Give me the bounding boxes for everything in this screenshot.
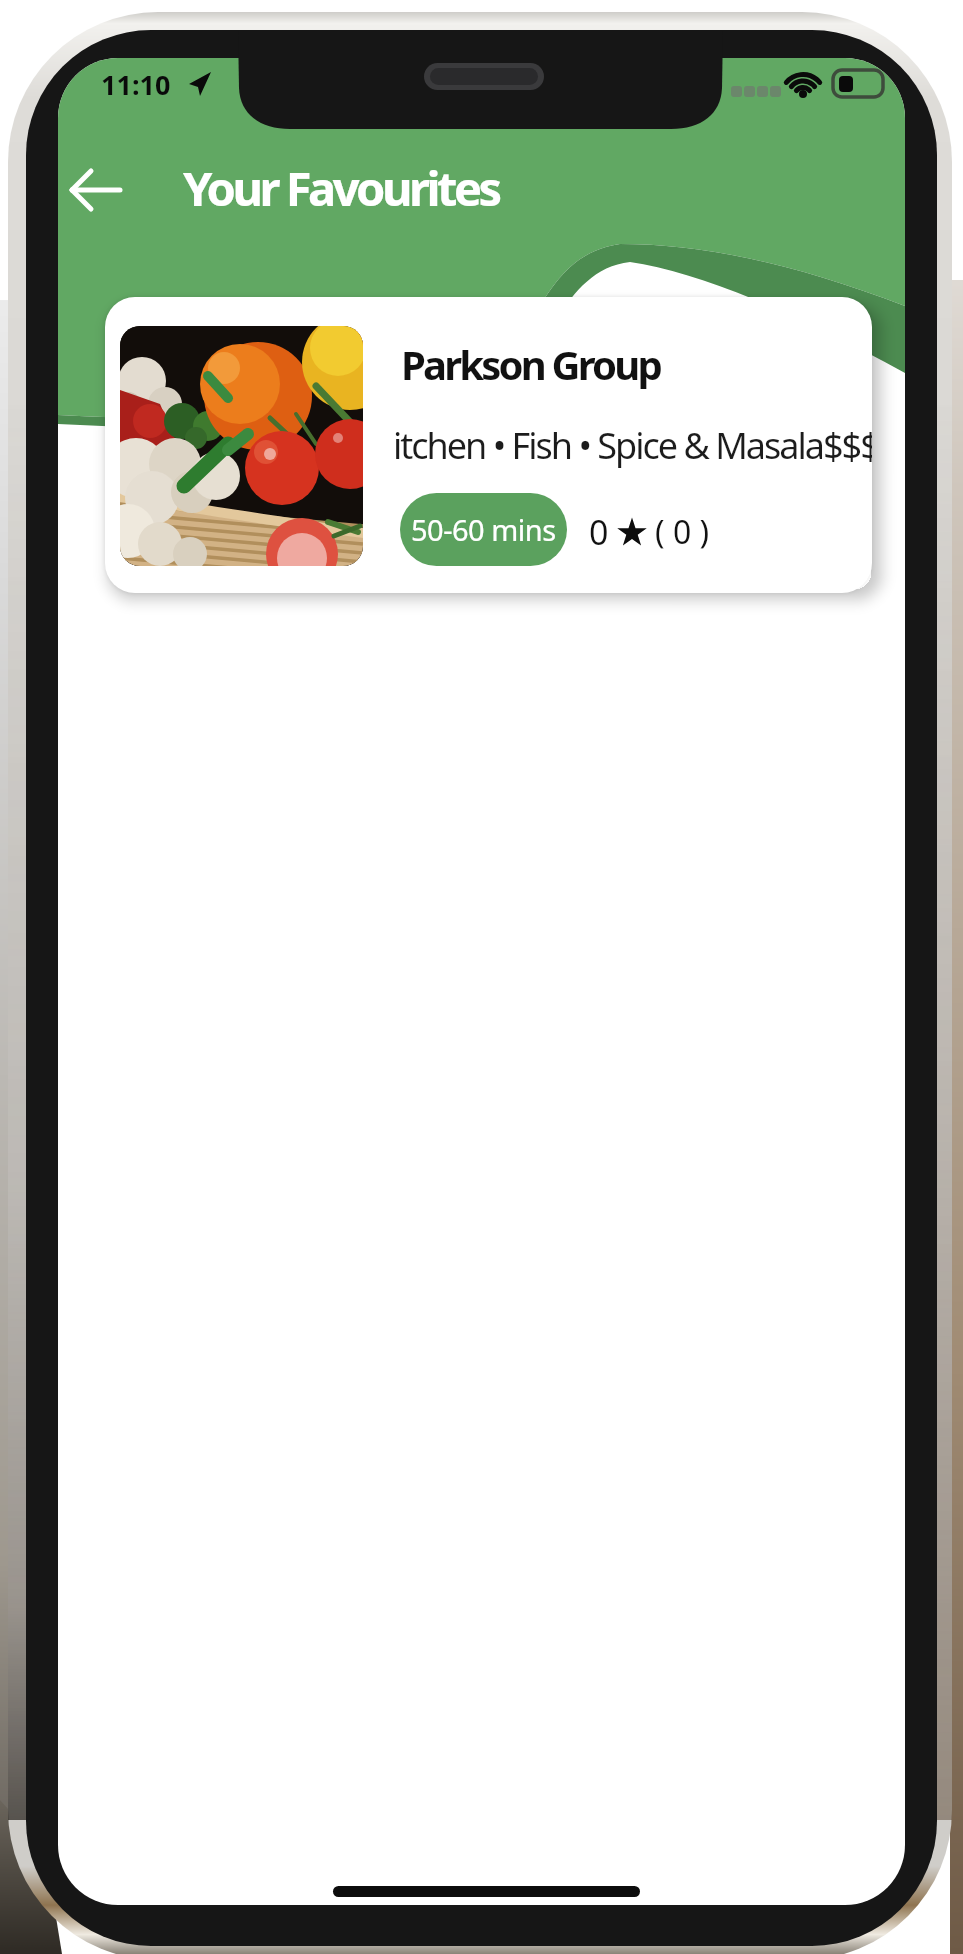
staticText: Your Favourites xyxy=(183,156,499,220)
staticText: 0 xyxy=(589,509,609,555)
staticText: itchen • Fish • Spice & Masala$$$$ xyxy=(393,421,872,470)
staticText: 11:10 xyxy=(101,66,171,103)
button[interactable]: Parkson Group xyxy=(105,297,872,593)
staticText: Parkson Group xyxy=(401,337,660,391)
button[interactable] xyxy=(58,158,134,222)
button[interactable]: 50-60 mins xyxy=(400,493,567,566)
staticText: ( 0 ) xyxy=(655,510,710,554)
staticText: 50-60 mins xyxy=(411,510,556,549)
